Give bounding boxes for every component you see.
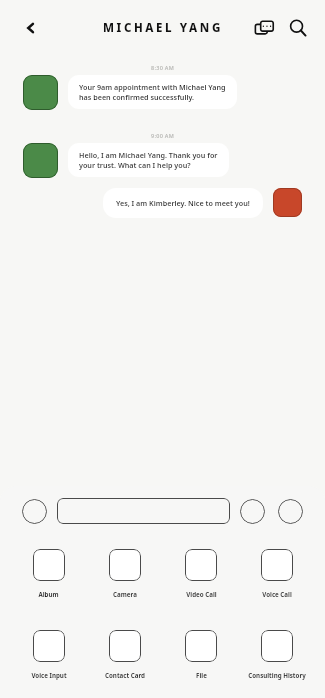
button[interactable]: Consulting History <box>239 630 315 679</box>
button[interactable]: Message input <box>57 498 230 524</box>
button[interactable]: Search <box>283 13 313 43</box>
button[interactable]: Yes, I am Kimberley. Nice to meet you! <box>103 188 263 218</box>
button[interactable]: File <box>163 630 239 679</box>
button[interactable]: Camera <box>87 549 163 598</box>
button[interactable]: Back <box>14 11 48 45</box>
button[interactable]: Your 9am appointment with Michael Yang <box>68 75 237 109</box>
button[interactable]: Voice Call <box>239 549 315 598</box>
button[interactable]: Contact avatar <box>23 143 58 178</box>
staticText: has been confirmed successfully. <box>79 92 195 102</box>
staticText: 9:00 AM <box>151 132 175 139</box>
staticText: Contact Card <box>105 671 145 679</box>
button[interactable]: Video Call <box>163 549 239 598</box>
staticText: Yes, I am Kimberley. Nice to meet you! <box>116 198 250 208</box>
staticText: Voice Call <box>262 590 292 598</box>
staticText: Your 9am appointment with Michael Yang <box>79 82 226 92</box>
button[interactable]: Emoji <box>240 499 265 524</box>
staticText: Hello, I am Michael Yang. Thank you for <box>79 150 218 160</box>
button[interactable]: My avatar <box>273 188 302 217</box>
staticText: 8:30 AM <box>151 64 175 71</box>
button[interactable]: Album <box>10 549 87 598</box>
button[interactable]: Messages <box>249 13 279 43</box>
staticText: MICHAEL YANG <box>103 20 223 36</box>
staticText: Camera <box>113 590 137 598</box>
staticText: your trust. What can I help you? <box>79 160 191 170</box>
button[interactable]: Voice Input <box>10 630 87 679</box>
staticText: Voice Input <box>31 671 67 679</box>
staticText: Consulting History <box>248 671 306 679</box>
button[interactable]: Voice <box>22 499 47 524</box>
staticText: Album <box>38 590 59 598</box>
staticText: Video Call <box>186 590 217 598</box>
button[interactable]: More <box>278 499 303 524</box>
button[interactable]: Hello, I am Michael Yang. Thank you for <box>68 143 229 177</box>
button[interactable]: Contact avatar <box>23 75 58 110</box>
staticText: File <box>196 671 207 679</box>
button[interactable]: Contact Card <box>87 630 163 679</box>
